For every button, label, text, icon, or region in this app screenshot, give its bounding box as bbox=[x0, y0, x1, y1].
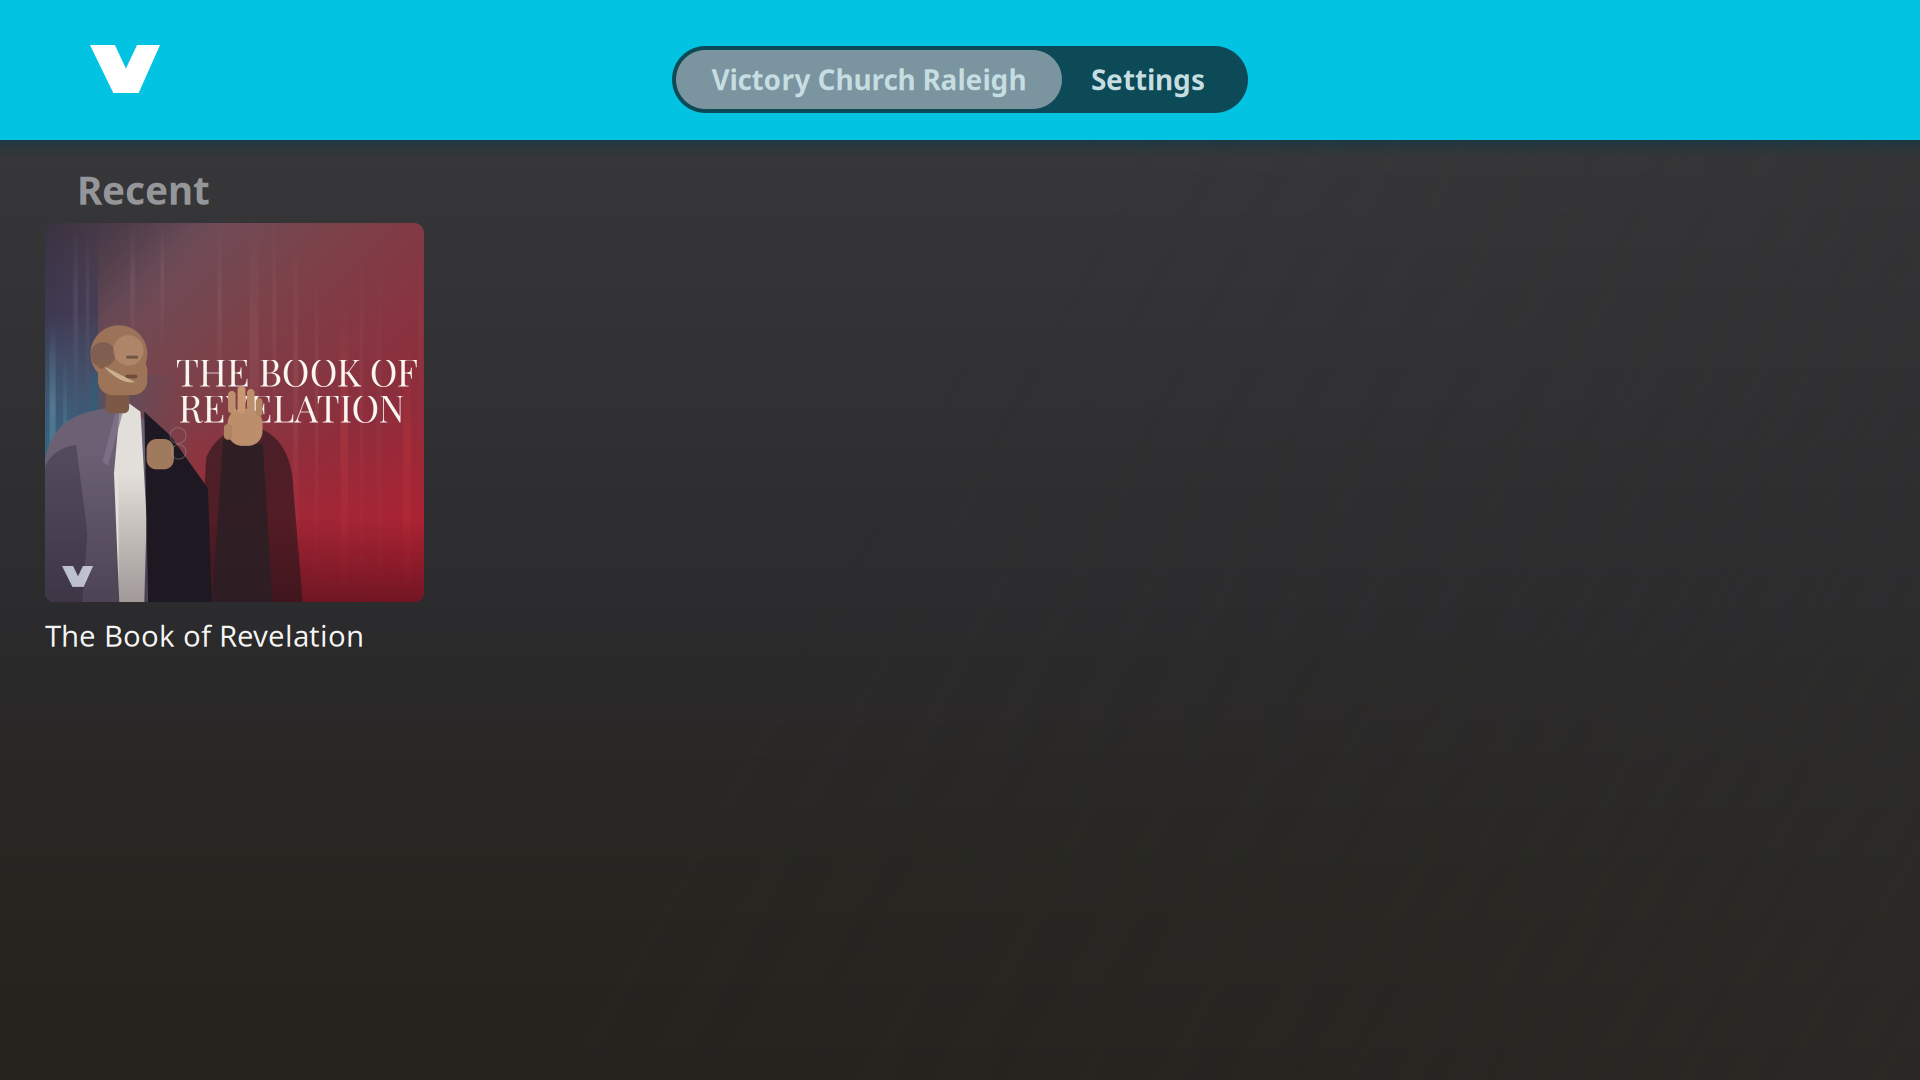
staticText: Recent bbox=[77, 164, 210, 215]
staticText: The Book of Revelation bbox=[45, 616, 364, 655]
button[interactable]: Settings bbox=[1062, 50, 1244, 109]
button[interactable]: Victory Church home bbox=[90, 45, 160, 93]
button[interactable]: Victory Church Raleigh bbox=[676, 50, 1062, 109]
staticText: THE BOOK OF bbox=[176, 346, 418, 396]
staticText: Settings bbox=[1091, 61, 1205, 98]
button[interactable]: THE BOOK OF bbox=[45, 223, 565, 655]
staticText: REVELATION bbox=[178, 382, 404, 432]
staticText: Victory Church Raleigh bbox=[711, 61, 1026, 98]
